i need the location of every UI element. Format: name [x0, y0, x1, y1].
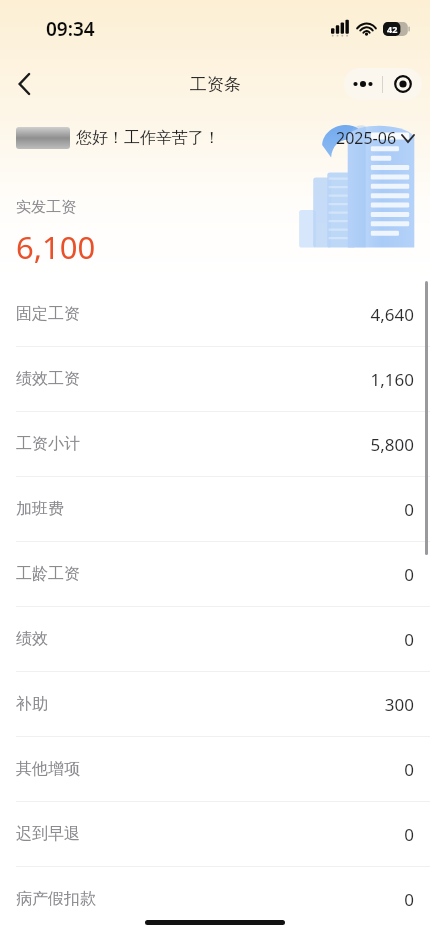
button[interactable]: 关闭 — [383, 68, 422, 100]
staticText: 0 — [404, 823, 414, 846]
staticText: 09:34 — [46, 16, 95, 42]
button[interactable]: 工资小计 — [0, 412, 430, 476]
button[interactable]: 加班费 — [0, 477, 430, 541]
button[interactable]: 2025-06 — [334, 124, 416, 152]
staticText: 工资条 — [190, 74, 241, 95]
button[interactable]: 病产假扣款 — [0, 867, 430, 931]
button[interactable]: 补助 — [0, 672, 430, 736]
button[interactable]: 迟到早退 — [0, 802, 430, 866]
staticText: 300 — [384, 693, 414, 716]
staticText: 迟到早退 — [16, 824, 80, 844]
staticText: 0 — [404, 758, 414, 781]
staticText: 6,100 — [16, 226, 96, 268]
staticText: 补助 — [16, 694, 48, 714]
staticText: 您好！工作辛苦了！ — [76, 128, 220, 148]
staticText: 2025-06 — [336, 127, 397, 149]
staticText: 病产假扣款 — [16, 889, 96, 909]
staticText: 5,800 — [370, 433, 414, 456]
button[interactable]: 返回 — [0, 60, 48, 108]
button[interactable]: 工龄工资 — [0, 542, 430, 606]
staticText: 0 — [404, 563, 414, 586]
staticText: 绩效 — [16, 629, 48, 649]
button[interactable]: 绩效工资 — [0, 347, 430, 411]
staticText: 0 — [404, 498, 414, 521]
button[interactable]: 绩效 — [0, 607, 430, 671]
staticText: 加班费 — [16, 499, 64, 519]
staticText: 1,160 — [370, 368, 414, 391]
button[interactable]: 其他增项 — [0, 737, 430, 801]
staticText: 其他增项 — [16, 759, 80, 779]
staticText: 固定工资 — [16, 304, 80, 324]
staticText: 42 — [387, 23, 398, 35]
button[interactable]: 更多 — [344, 68, 382, 100]
staticText: 0 — [404, 888, 414, 911]
button[interactable]: 固定工资 — [0, 282, 430, 346]
staticText: 工资小计 — [16, 434, 80, 454]
staticText: 绩效工资 — [16, 369, 80, 389]
staticText: 0 — [404, 628, 414, 651]
staticText: 工龄工资 — [16, 564, 80, 584]
staticText: 4,640 — [370, 303, 414, 326]
staticText: 实发工资 — [16, 198, 76, 217]
